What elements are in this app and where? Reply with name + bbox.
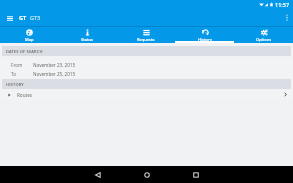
button[interactable]: Options <box>234 27 293 43</box>
staticText: 11:57 <box>275 1 290 8</box>
staticText: November 25, 2015 <box>33 71 293 77</box>
button[interactable]: Home <box>134 166 160 183</box>
button[interactable]: Open navigation drawer <box>4 12 16 24</box>
staticText: Status <box>81 37 94 42</box>
staticText: History <box>198 37 212 42</box>
button[interactable]: Status <box>58 27 116 43</box>
staticText: Map <box>25 37 34 42</box>
staticText: Options <box>256 37 272 42</box>
button[interactable]: Map <box>0 27 58 43</box>
staticText: Requests <box>137 37 155 42</box>
staticText: GT3 <box>30 14 41 21</box>
staticText: DATES OF SEARCH <box>6 49 43 54</box>
button[interactable]: Recent apps <box>183 166 209 183</box>
button[interactable]: More options <box>281 8 293 27</box>
button[interactable]: Requests <box>116 27 175 43</box>
staticText: HISTORY <box>6 82 24 87</box>
staticText: From <box>11 62 23 68</box>
staticText: To <box>11 71 17 77</box>
staticText: Routes <box>17 92 32 98</box>
staticText: GT <box>19 14 27 21</box>
button[interactable]: From <box>0 60 293 69</box>
button[interactable]: To <box>0 69 293 78</box>
button[interactable]: History <box>175 27 234 43</box>
staticText: November 23, 2015 <box>33 62 293 68</box>
button[interactable]: Back <box>85 166 111 183</box>
button[interactable]: Routes <box>0 90 293 99</box>
